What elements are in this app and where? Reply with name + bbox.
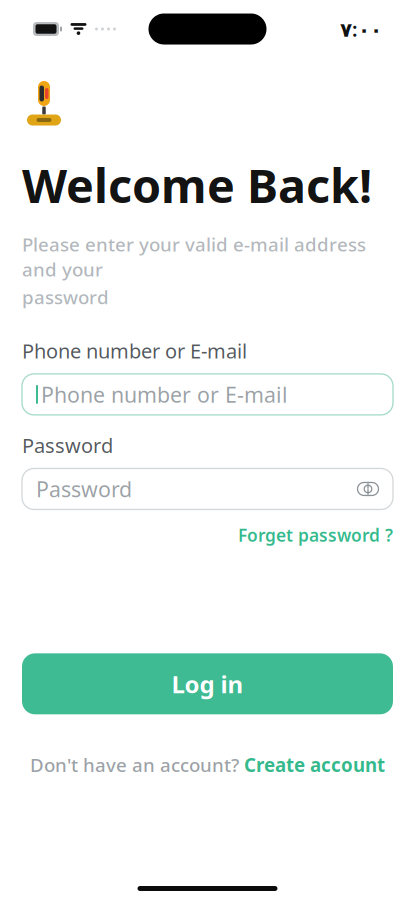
button[interactable]: Log in [22, 653, 393, 714]
staticText: Create account [244, 752, 385, 777]
staticText: Password [36, 475, 132, 503]
staticText: Phone number or E-mail [22, 337, 247, 364]
staticText: Phone number or E-mail [41, 380, 288, 408]
staticText: password [22, 285, 109, 309]
button[interactable]: Forget password ? [228, 519, 393, 550]
button[interactable]: Phone number or E-mail [22, 374, 393, 415]
staticText: Don't have an account? [30, 752, 239, 777]
staticText: Password [22, 432, 113, 458]
staticText: ۷:۰۰ [340, 16, 382, 42]
staticText: Log in [171, 668, 243, 700]
staticText: Forget password ? [238, 523, 393, 546]
staticText: Please enter your valid e-mail address a… [22, 232, 366, 282]
button[interactable]: Don't have an account? [30, 746, 385, 783]
button[interactable]: Password [22, 468, 393, 509]
staticText: Welcome Back! [22, 154, 372, 216]
